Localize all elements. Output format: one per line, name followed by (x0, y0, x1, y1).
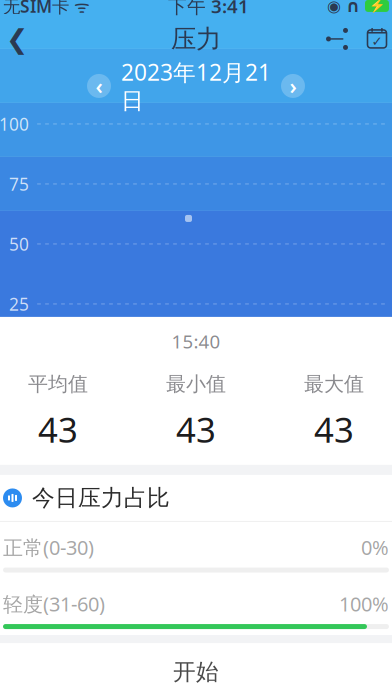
staticText: 43 (314, 406, 354, 452)
staticText: 25 (9, 292, 29, 315)
staticText: 75 (9, 172, 29, 195)
staticText: 15:40 (171, 329, 220, 354)
button[interactable]: 返回 (0, 17, 39, 61)
staticText: 今日压力占比 (32, 484, 170, 512)
staticText: 0% (361, 534, 389, 560)
staticText: ∩ (346, 0, 360, 16)
staticText: ‹ (95, 72, 102, 100)
staticText: 最小值 (166, 372, 226, 396)
staticText: 下午 3:41 (168, 0, 249, 18)
button[interactable]: 后一天 (281, 74, 305, 98)
staticText: 43 (38, 406, 78, 452)
staticText: 轻度(31-60) (3, 590, 105, 617)
staticText: ⚡ (368, 0, 385, 13)
staticText: 最大值 (304, 372, 364, 396)
staticText: 无SIM卡 ᯤ (3, 0, 90, 17)
staticText: 100% (339, 590, 389, 617)
staticText: ✓ (371, 34, 382, 49)
staticText: 100 (0, 112, 29, 135)
button[interactable]: 开始 (0, 643, 392, 696)
staticText: 开始 (173, 658, 219, 686)
staticText: ❮ (6, 24, 28, 54)
staticText: ◉ (327, 0, 341, 15)
staticText: 50 (9, 232, 29, 255)
staticText: › (289, 72, 296, 100)
staticText: 43 (176, 406, 216, 452)
staticText: 平均值 (28, 372, 88, 396)
button[interactable]: 日历 (357, 17, 392, 61)
button[interactable]: 前一天 (87, 74, 111, 98)
staticText: 2023年12月21日 (121, 57, 271, 115)
staticText: 正常(0-30) (3, 534, 94, 560)
button[interactable]: 分享 (317, 17, 357, 61)
staticText: 压力 (171, 23, 221, 54)
